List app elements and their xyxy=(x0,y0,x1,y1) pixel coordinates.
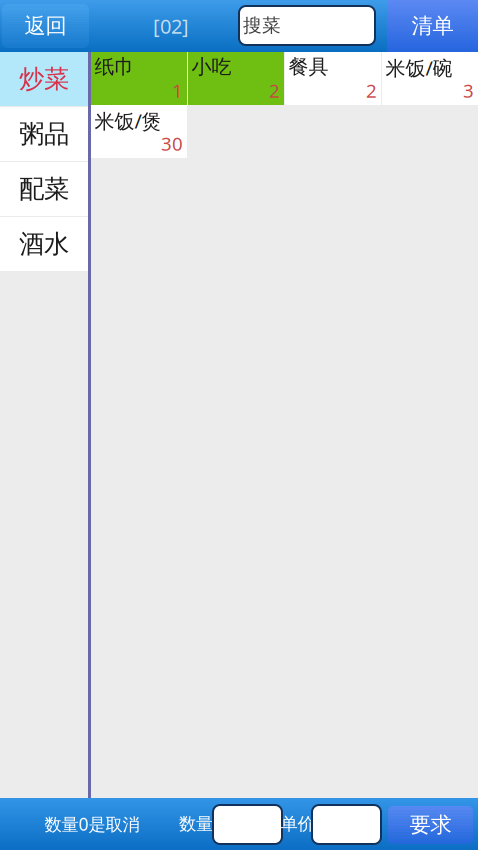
staticText: [02] xyxy=(153,13,189,39)
staticText: 返回 xyxy=(24,13,66,39)
staticText: 数量0是取消 xyxy=(44,812,139,835)
button[interactable]: 米饭/煲 xyxy=(91,105,187,158)
button[interactable]: 小吃 xyxy=(188,52,284,105)
button[interactable]: 配菜 xyxy=(0,162,88,216)
staticText: 数量 xyxy=(179,813,213,835)
staticText: 炒菜 xyxy=(19,63,69,94)
staticText: 3 xyxy=(463,78,474,103)
button[interactable]: 要求 xyxy=(388,806,473,844)
button[interactable]: 炒菜 xyxy=(0,52,88,106)
button[interactable]: 纸巾 xyxy=(91,52,187,105)
staticText: 纸巾 xyxy=(94,54,134,79)
staticText: 要求 xyxy=(409,812,451,838)
staticText: 粥品 xyxy=(19,118,69,149)
staticText: 2 xyxy=(366,78,377,103)
staticText: 小吃 xyxy=(191,54,231,79)
staticText: 米饭/碗 xyxy=(385,54,452,81)
button[interactable]: 搜菜 xyxy=(239,6,375,45)
staticText: 搜菜 xyxy=(243,14,281,37)
button[interactable]: 酒水 xyxy=(0,217,88,271)
staticText: 米饭/煲 xyxy=(94,107,161,134)
staticText: 酒水 xyxy=(19,228,69,259)
button[interactable]: 餐具 xyxy=(285,52,381,105)
button[interactable]: 返回 xyxy=(2,4,89,48)
staticText: 单价 xyxy=(280,813,314,835)
staticText: 配菜 xyxy=(19,173,69,204)
staticText: 1 xyxy=(172,78,183,103)
staticText: 30 xyxy=(161,131,183,156)
button[interactable]: 粥品 xyxy=(0,107,88,161)
staticText: 清单 xyxy=(411,13,453,39)
button[interactable]: 清单 xyxy=(387,0,478,52)
button[interactable] xyxy=(312,805,381,844)
staticText: 2 xyxy=(269,78,280,103)
button[interactable] xyxy=(213,805,282,844)
staticText: 餐具 xyxy=(288,54,328,79)
button[interactable]: 米饭/碗 xyxy=(382,52,478,105)
